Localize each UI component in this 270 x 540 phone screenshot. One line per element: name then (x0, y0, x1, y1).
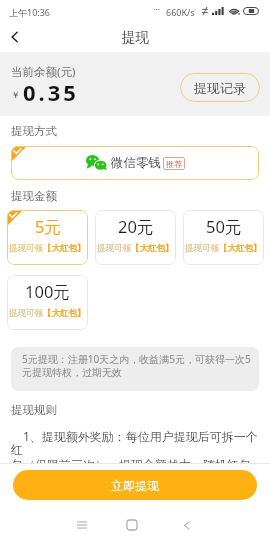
staticText: 0.35 (23, 77, 79, 107)
staticText: 5元 (35, 215, 61, 238)
button[interactable]: 20元 (95, 210, 176, 265)
staticText: 当前余额(元) (11, 64, 76, 80)
staticText: ··· (153, 3, 161, 15)
button[interactable]: Back (0, 22, 30, 52)
staticText: 大 (11, 485, 23, 500)
button[interactable]: Home (117, 510, 147, 540)
staticText: ￥ (11, 89, 20, 100)
button[interactable]: 提现记录 (180, 73, 260, 102)
staticText: 50元 (206, 215, 242, 238)
staticText: 660K/s (166, 6, 195, 18)
button[interactable]: Back (171, 510, 201, 540)
staticText: 100元 (25, 280, 70, 303)
staticText: 元提现特权，过期无效 (22, 366, 122, 379)
staticText: 提现方式 (11, 124, 57, 138)
button[interactable]: 50元 (183, 210, 264, 265)
button[interactable]: 微信零钱 (11, 146, 259, 180)
staticText: 包（仅限前三次），提现金额越大，随机红包越 (11, 457, 259, 485)
staticText: 提现可领【大红包】 (9, 308, 86, 319)
staticText: 推荐 (166, 159, 182, 169)
staticText: 提现可领【大红包】 (9, 243, 86, 254)
staticText: 提现 (122, 29, 149, 46)
button[interactable]: 立即提现 (13, 470, 257, 500)
staticText: 提现记录 (194, 80, 246, 96)
staticText: 20元 (118, 215, 154, 238)
staticText: 微信零钱 (111, 155, 161, 171)
staticText: 提现金额 (11, 189, 57, 203)
staticText: 提现规则 (11, 403, 57, 417)
staticText: 上午10:36 (9, 6, 51, 18)
staticText: 5元提现：注册10天之内，收益满5元，可获得一次5 (22, 352, 251, 366)
button[interactable]: 100元 (7, 275, 88, 330)
staticText: 提现可领【大红包】 (185, 243, 262, 254)
staticText: 提现可领【大红包】 (97, 243, 174, 254)
staticText: 立即提现 (111, 478, 159, 493)
button[interactable]: 5元 (7, 210, 88, 265)
button[interactable]: Recent apps (67, 510, 97, 540)
staticText: 1、提现额外奖励：每位用户提现后可拆一个红 (11, 428, 259, 457)
